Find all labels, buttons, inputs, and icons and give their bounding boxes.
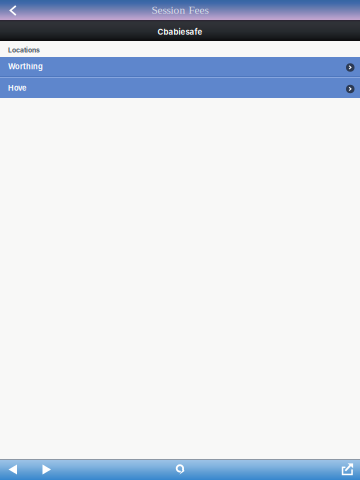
button[interactable]: Forward — [26, 459, 67, 480]
button[interactable]: Hove — [0, 78, 360, 98]
staticText: Locations — [8, 46, 40, 54]
staticText: Worthing — [8, 62, 43, 71]
button[interactable]: Back — [0, 459, 26, 480]
staticText: Hove — [8, 83, 26, 92]
button[interactable]: Back — [0, 0, 22, 20]
staticText: Cbabiesafe — [157, 27, 202, 37]
button[interactable]: Share — [334, 459, 360, 480]
staticText: Session Fees — [151, 4, 208, 16]
button[interactable]: Worthing — [0, 57, 360, 76]
button[interactable]: Reload — [163, 459, 197, 480]
